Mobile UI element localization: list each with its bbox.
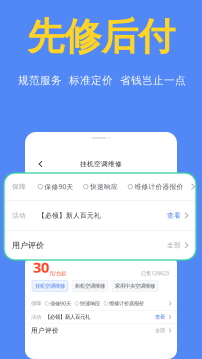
staticText: 保障 [31,300,41,307]
staticText: 快速响应 [90,183,118,191]
staticText: 保修90天 [44,182,73,191]
staticText: 元/台起 [49,270,66,277]
staticText: 用户评价 [31,200,59,209]
staticText: 活动 [31,188,41,194]
staticText: 柜机空调维修 [75,283,105,289]
staticText: 保障 [12,183,26,191]
staticText: 家用中央空调维修 [115,283,155,289]
staticText: 省钱岂止一点 [120,74,186,87]
staticText: 30 [33,257,49,277]
button[interactable]: 挂机空调维修 [32,280,68,291]
staticText: 【必领】新人百元礼 [45,314,90,320]
button[interactable]: 活动 [4,201,196,230]
staticText: 先修后付 [27,14,175,60]
staticText: 活动 [31,314,41,320]
staticText: 标准定价 [69,74,113,87]
staticText: 查看 [155,314,165,320]
staticText: 已售129623 [141,270,169,277]
staticText: 快速响应 [80,300,100,307]
staticText: 维修计价器报价 [134,183,183,191]
button[interactable]: 家用中央空调维修 [112,280,158,291]
staticText: 维修计价器报价 [109,300,144,307]
staticText: 挂机空调维修 [35,283,65,289]
staticText: 用户评价 [12,240,44,250]
staticText: 【必领】新人百元礼 [38,211,101,220]
button[interactable]: 柜机空调维修 [72,280,108,291]
staticText: 活动 [12,211,26,220]
staticText: 【必领】新人百元礼 [45,188,90,194]
button[interactable]: 用户评价 [4,231,196,260]
staticText: 全部 [155,327,165,334]
staticText: 保修90天 [50,300,71,307]
staticText: 查看 [167,211,181,220]
staticText: 规范服务 [18,74,62,87]
staticText: 挂机空调维修 [80,160,122,168]
staticText: 用户评价 [31,326,59,335]
staticText: 全部 [167,241,181,249]
button[interactable]: 保障 [4,173,196,200]
staticText: 查看 [155,188,165,194]
